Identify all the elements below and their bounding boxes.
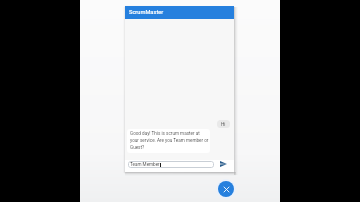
button[interactable]: Send [217, 158, 229, 170]
button[interactable]: Team Member [130, 161, 214, 168]
button[interactable]: Good day! This is scrum master at your s… [127, 129, 210, 153]
staticText: Hi [221, 122, 226, 127]
button[interactable]: Close chat [218, 181, 234, 197]
button[interactable]: ScrumMaster [125, 6, 234, 19]
button[interactable]: Hi [221, 120, 226, 128]
staticText: Good day! This is scrum master at your s… [130, 131, 209, 151]
staticText: Team Member [130, 162, 160, 167]
staticText: ScrumMaster [129, 9, 164, 16]
